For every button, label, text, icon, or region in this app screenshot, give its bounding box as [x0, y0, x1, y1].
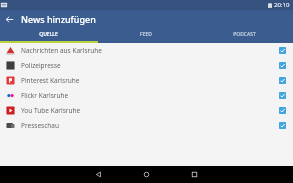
staticText: Presseschau [21, 121, 278, 130]
button[interactable]: PODCAST [195, 28, 293, 41]
button[interactable]: Auswahl Polizeipresse [278, 61, 287, 70]
staticText: PODCAST [233, 31, 256, 38]
button[interactable]: Pinterest Karlsruhe [0, 73, 293, 88]
staticText: FEED [140, 31, 152, 38]
button[interactable]: Startbildschirm [138, 166, 155, 183]
staticText: Flickr Karlsruhe [21, 91, 278, 100]
button[interactable]: FEED [97, 28, 195, 41]
button[interactable]: Nachrichten aus Karlsruhe [0, 43, 293, 58]
button[interactable]: Zurück [0, 10, 18, 28]
button[interactable]: Presseschau [0, 118, 293, 133]
button[interactable]: Auswahl Flickr Karlsruhe [278, 91, 287, 100]
button[interactable]: Flickr Karlsruhe [0, 88, 293, 103]
staticText: News hinzufügen [21, 13, 96, 25]
button[interactable]: Auswahl Nachrichten aus Karlsruhe [278, 46, 287, 55]
staticText: Nachrichten aus Karlsruhe [21, 46, 278, 55]
button[interactable]: Auswahl Pinterest Karlsruhe [278, 76, 287, 85]
button[interactable]: Zurück [90, 166, 107, 183]
button[interactable]: You Tube Karlsruhe [0, 103, 293, 118]
staticText: You Tube Karlsruhe [21, 106, 278, 115]
staticText: Polizeipresse [21, 61, 278, 70]
staticText: QUELLE [39, 31, 58, 38]
button[interactable]: QUELLE [0, 28, 97, 41]
button[interactable]: Polizeipresse [0, 58, 293, 73]
button[interactable]: Auswahl You Tube Karlsruhe [278, 106, 287, 115]
button[interactable]: Auswahl Presseschau [278, 121, 287, 130]
staticText: Pinterest Karlsruhe [21, 76, 278, 85]
staticText: 20:10 [274, 1, 290, 9]
button[interactable]: Zuletzt verwendet [186, 166, 203, 183]
